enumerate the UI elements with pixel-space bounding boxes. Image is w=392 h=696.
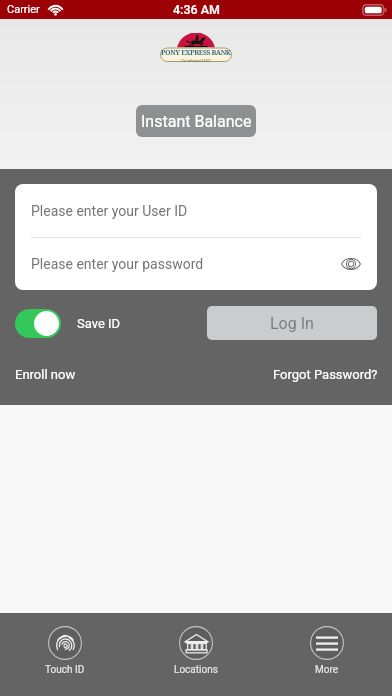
staticText: PONY EXPRESS BANK <box>161 48 231 58</box>
button[interactable]: Locations <box>130 613 261 696</box>
staticText: Please enter your User ID <box>31 203 188 219</box>
button[interactable]: Please enter your User ID <box>15 184 377 237</box>
staticText: Locations <box>174 664 218 676</box>
staticText: "Established 1899" <box>180 58 212 62</box>
button[interactable]: Show password <box>340 252 361 276</box>
button[interactable]: Forgot Password? <box>273 367 378 382</box>
button[interactable]: Save ID toggle <box>15 309 61 338</box>
staticText: Enroll now <box>15 367 76 382</box>
button[interactable]: Log In <box>207 306 377 340</box>
staticText: Touch ID <box>45 664 85 676</box>
button[interactable]: Enroll now <box>15 367 76 382</box>
staticText: More <box>315 664 339 676</box>
button[interactable]: Please enter your password <box>15 238 377 290</box>
button[interactable]: Touch ID <box>0 613 130 696</box>
staticText: Forgot Password? <box>273 367 378 382</box>
staticText: Save ID <box>77 316 121 331</box>
button[interactable]: Instant Balance <box>136 105 256 137</box>
staticText: 4:36 AM <box>173 2 220 17</box>
staticText: Please enter your password <box>31 256 204 272</box>
staticText: Log In <box>270 314 314 333</box>
button[interactable]: More <box>261 613 392 696</box>
staticText: Carrier <box>7 3 40 16</box>
staticText: Instant Balance <box>141 112 252 131</box>
